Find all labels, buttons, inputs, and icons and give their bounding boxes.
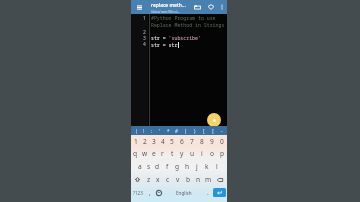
button[interactable]: Enter [213,188,226,197]
button[interactable]: h [182,160,192,173]
staticText: g [175,162,180,171]
button[interactable]: q [131,147,140,160]
button[interactable]: [ [199,126,208,135]
staticText: str = str [151,42,178,48]
button[interactable]: 8 [197,135,207,147]
button[interactable]: Backspace [213,173,227,186]
staticText: j [196,162,198,171]
button[interactable]: Save [204,0,217,14]
button[interactable]: k [202,160,212,173]
button[interactable]: - [217,126,226,135]
button[interactable]: i [197,147,207,160]
staticText: [ [203,128,205,134]
staticText: 0 [220,137,224,146]
button[interactable]: z [144,173,153,186]
button[interactable]: 5 [167,135,177,147]
button[interactable]: n [193,173,203,186]
staticText: p [220,149,225,158]
button[interactable]: 7 [187,135,197,147]
staticText: e [152,149,156,158]
staticText: ?123 [133,190,143,196]
staticText: ' [159,128,161,134]
staticText: 9 [210,137,214,146]
staticText: u [190,149,195,158]
staticText: k [205,162,209,171]
staticText: . [207,188,209,197]
button[interactable]: w [140,147,149,160]
button[interactable]: * [164,126,172,135]
staticText: 8 [200,137,204,146]
button[interactable]: b [183,173,193,186]
button[interactable]: English [164,186,203,199]
staticText: 2 [143,137,147,146]
staticText: ] [212,128,214,134]
button[interactable]: 3 [149,135,158,147]
staticText: z [147,175,151,184]
button[interactable]: Period [203,186,212,199]
button[interactable]: t [167,147,177,160]
button[interactable]: ! [140,126,148,135]
staticText: replace meth... [151,2,186,9]
button[interactable]: # [172,126,181,135]
staticText: 3 [143,35,146,41]
staticText: * [167,128,170,134]
button[interactable]: m [203,173,213,186]
button[interactable]: u [187,147,197,160]
staticText: t [171,149,174,158]
staticText: : [151,128,153,134]
staticText: ) [194,128,196,134]
staticText: English [176,190,192,196]
staticText: #Python Program to use [151,15,216,21]
button[interactable]: More options [217,0,227,14]
staticText: w [142,149,148,158]
staticText: Replace Method in Strings [151,22,225,28]
button[interactable]: e [149,147,158,160]
button[interactable]: x [153,173,163,186]
staticText: 4 [161,137,165,146]
staticText: d [155,162,160,171]
button[interactable]: v [173,173,183,186]
button[interactable]: y [177,147,187,160]
staticText: 4 [143,41,146,47]
button[interactable]: Navigation menu [131,0,147,14]
button[interactable]: : [148,126,156,135]
button[interactable]: g [172,160,182,173]
button[interactable]: p [217,147,227,160]
button[interactable]: ) [190,126,199,135]
button[interactable]: l [212,160,222,173]
staticText: 7 [190,137,194,146]
button[interactable]: c [163,173,173,186]
button[interactable]: ?123 [131,186,145,199]
button[interactable]: r [158,147,167,160]
button[interactable]: a [135,160,144,173]
button[interactable]: Shift [131,173,144,186]
staticText: r [161,149,164,158]
staticText: s [147,162,151,171]
staticText: str = 'subscribe' [151,35,201,41]
button[interactable]: 6 [177,135,187,147]
button[interactable]: 4 [158,135,167,147]
button[interactable]: ' [156,126,164,135]
button[interactable]: ( [181,126,190,135]
button[interactable]: f [162,160,172,173]
staticText: ! [143,128,145,134]
button[interactable]: Comma [145,186,154,199]
button[interactable]: 0 [217,135,227,147]
button[interactable]: o [207,147,217,160]
button[interactable]: | [132,126,140,135]
button[interactable]: 2 [140,135,149,147]
button[interactable]: Emoji [154,186,164,199]
button[interactable]: d [153,160,162,173]
staticText: b [186,175,191,184]
staticText: m [205,175,212,184]
staticText: v [176,175,180,184]
button[interactable]: Open file [191,0,204,14]
button[interactable]: s [144,160,153,173]
button[interactable]: 9 [207,135,217,147]
button[interactable]: Run [207,113,221,127]
staticText: o [210,149,214,158]
button[interactable]: j [192,160,202,173]
button[interactable]: 1 [131,135,140,147]
button[interactable]: ] [208,126,217,135]
staticText: i [201,149,203,158]
